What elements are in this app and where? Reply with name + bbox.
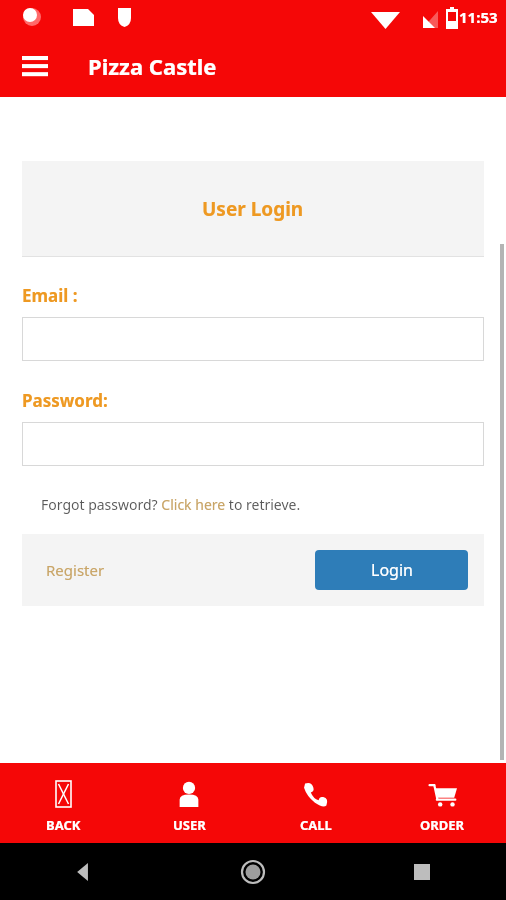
button[interactable]: Recent apps [337, 843, 506, 900]
button[interactable]: Back [0, 843, 168, 900]
staticText: ORDER [420, 816, 465, 834]
staticText: Password: [22, 389, 108, 412]
button[interactable]: Register [46, 560, 105, 580]
button[interactable]: Home [168, 843, 337, 900]
staticText: Pizza Castle [88, 51, 217, 81]
staticText: Register [46, 560, 105, 580]
button[interactable] [22, 422, 484, 466]
staticText: 11:53 [459, 7, 498, 27]
button[interactable]: Open navigation menu [14, 45, 56, 87]
button[interactable]: ORDER [379, 763, 506, 843]
button[interactable]: CALL [252, 763, 379, 843]
button[interactable]: Login [315, 550, 468, 590]
staticText: User Login [202, 196, 304, 222]
staticText: CALL [300, 816, 332, 834]
staticText: BACK [46, 816, 81, 834]
button[interactable]: Forgot password? Click here to retrieve. [41, 495, 301, 514]
staticText: Email : [22, 284, 78, 307]
staticText: Login [371, 559, 413, 581]
button[interactable]: USER [126, 763, 252, 843]
button[interactable]: BACK [0, 763, 126, 843]
button[interactable] [22, 317, 484, 361]
staticText: USER [173, 816, 206, 834]
